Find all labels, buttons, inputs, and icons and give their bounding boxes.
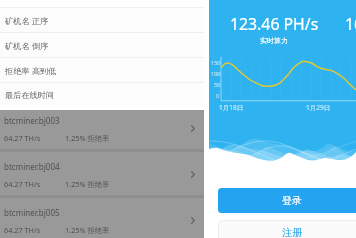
- other: Details: [191, 125, 195, 132]
- button[interactable]: 注册: [218, 220, 356, 238]
- button[interactable]: btcminer.bj004: [0, 152, 204, 198]
- staticText: 50: [214, 81, 221, 88]
- button[interactable]: btcminer.bj003: [0, 110, 204, 152]
- button[interactable]: 拒绝率 高到低: [0, 57, 204, 82]
- staticText: 100: [211, 70, 221, 77]
- staticText: 1月29日: [306, 103, 331, 112]
- staticText: btcminer.bj003: [4, 115, 60, 126]
- staticText: 1.25% 拒绝率: [65, 225, 110, 235]
- staticText: 16: [345, 13, 356, 35]
- button[interactable]: 登录: [218, 188, 356, 213]
- staticText: 注册: [282, 226, 302, 238]
- other: Details: [191, 217, 195, 224]
- staticText: 拒绝率 高到低: [5, 65, 57, 76]
- staticText: 150: [211, 59, 221, 66]
- staticText: 1.25% 拒绝率: [65, 179, 110, 189]
- button[interactable]: 最后在线时间: [0, 82, 204, 107]
- staticText: btcminer.bj005: [4, 207, 60, 218]
- staticText: 123.46 PH/s: [230, 13, 319, 35]
- staticText: 1月18日: [219, 103, 244, 112]
- staticText: btcminer.bj004: [4, 161, 60, 172]
- staticText: 64.27 TH/s: [4, 179, 41, 189]
- other: Details: [191, 171, 195, 178]
- staticText: 64.27 TH/s: [4, 133, 41, 143]
- staticText: 最后在线时间: [5, 90, 55, 100]
- staticText: 0: [216, 92, 220, 99]
- button[interactable]: 矿机名 倒序: [0, 32, 204, 57]
- staticText: 64.27 TH/s: [4, 225, 41, 235]
- staticText: 实时算力: [260, 36, 288, 45]
- staticText: 矿机名 正序: [5, 15, 49, 26]
- staticText: 矿机名 倒序: [5, 40, 49, 51]
- staticText: 1.25% 拒绝率: [65, 133, 110, 143]
- staticText: 登录: [282, 194, 302, 207]
- button[interactable]: btcminer.bj005: [0, 198, 204, 238]
- button[interactable]: 矿机名 正序: [0, 7, 204, 32]
